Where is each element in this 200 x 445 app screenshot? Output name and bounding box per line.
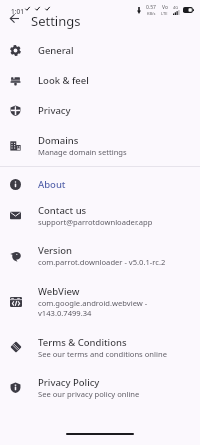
staticText: Vo	[162, 4, 168, 11]
staticText: Terms & Conditions	[38, 336, 127, 349]
button[interactable]: General	[0, 35, 200, 65]
button[interactable]: Domains	[0, 125, 200, 166]
staticText: Privacy	[38, 104, 71, 117]
staticText: com.parrot.downloader - v5.0.1-rc.2	[38, 257, 166, 267]
button[interactable]: Look & feel	[0, 65, 200, 95]
button[interactable]: Version	[0, 235, 200, 276]
staticText: support@parrotdownloader.app	[38, 217, 153, 227]
staticText: Manage domain settings	[38, 147, 127, 157]
staticText: General	[38, 44, 74, 57]
staticText: Version	[38, 244, 73, 257]
staticText: 0.57	[146, 4, 156, 11]
staticText: 4G	[173, 5, 179, 10]
button[interactable]: Contact us	[0, 195, 200, 235]
staticText: See our terms and conditions online	[38, 349, 167, 359]
button[interactable]: WebView	[0, 276, 200, 327]
button[interactable]: Terms & Conditions	[0, 327, 200, 367]
button[interactable]: Privacy	[0, 95, 200, 125]
staticText: Domains	[38, 134, 79, 147]
staticText: See our privacy policy online	[38, 389, 140, 399]
staticText: com.google.android.webview - v143.0.7499…	[38, 298, 148, 318]
button[interactable]: Privacy Policy	[0, 367, 200, 407]
staticText: 1:01	[11, 7, 24, 16]
staticText: Look & feel	[38, 74, 89, 87]
staticText: About	[38, 178, 66, 191]
button[interactable]: About	[0, 173, 200, 195]
staticText: WebView	[38, 285, 80, 298]
staticText: Contact us	[38, 204, 87, 217]
staticText: Settings	[31, 12, 81, 30]
staticText: LTE	[161, 11, 168, 16]
staticText: Privacy Policy	[38, 376, 100, 389]
staticText: KB/s	[147, 11, 156, 16]
button[interactable]: Back	[4, 8, 25, 29]
